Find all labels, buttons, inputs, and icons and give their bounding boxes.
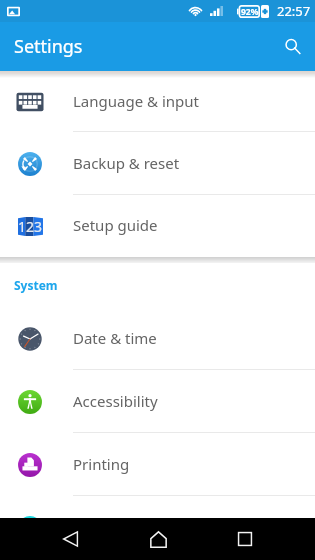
button[interactable]: Backup & reset: [0, 132, 315, 195]
button[interactable]: Language & input: [0, 71, 315, 132]
staticText: Setup guide: [73, 215, 158, 235]
button[interactable]: Back: [47, 518, 93, 560]
staticText: System: [14, 277, 58, 293]
staticText: Settings: [14, 34, 83, 59]
button[interactable]: Printing: [0, 433, 315, 496]
button[interactable]: Recent apps: [222, 518, 268, 560]
button[interactable]: About phone: [0, 496, 315, 518]
button[interactable]: Accessibility: [0, 370, 315, 433]
button[interactable]: 123: [0, 195, 315, 257]
button[interactable]: Home: [135, 518, 181, 560]
button[interactable]: Date & time: [0, 307, 315, 370]
staticText: 22:57: [277, 2, 311, 20]
staticText: Language & input: [73, 91, 199, 111]
staticText: Date & time: [73, 328, 157, 348]
staticText: Accessibility: [73, 391, 158, 411]
staticText: 92%: [241, 6, 259, 18]
button[interactable]: Search: [266, 22, 315, 71]
staticText: 123: [18, 217, 43, 236]
staticText: Printing: [73, 454, 130, 474]
staticText: Backup & reset: [73, 153, 180, 173]
